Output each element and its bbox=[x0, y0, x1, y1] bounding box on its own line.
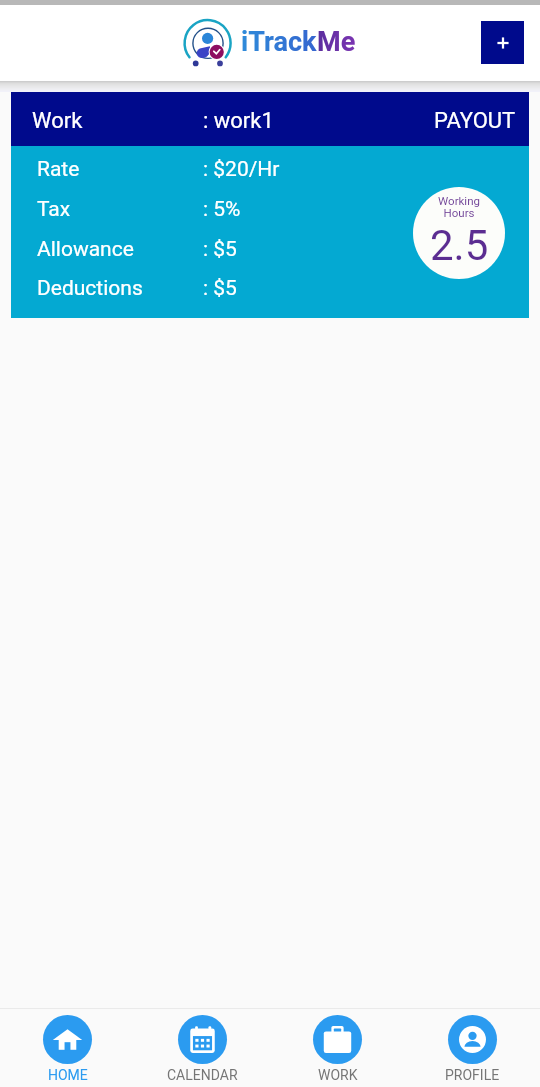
button[interactable]: HOME bbox=[0, 1008, 135, 1087]
staticText: : work1 bbox=[203, 108, 274, 134]
staticText: 2.5 bbox=[430, 221, 489, 270]
staticText: Work bbox=[32, 108, 83, 134]
button[interactable]: Add new work entry bbox=[481, 21, 524, 64]
staticText: Deductions bbox=[37, 276, 143, 301]
staticText: PROFILE bbox=[445, 1067, 500, 1083]
button[interactable]: PROFILE bbox=[405, 1008, 540, 1087]
staticText: Rate bbox=[37, 157, 80, 182]
staticText: : $20/Hr bbox=[203, 157, 280, 182]
staticText: Me bbox=[317, 26, 356, 58]
staticText: Allowance bbox=[37, 237, 134, 262]
staticText: PAYOUT bbox=[434, 108, 516, 134]
button[interactable]: Work bbox=[11, 92, 529, 146]
button[interactable]: CALENDAR bbox=[135, 1008, 270, 1087]
staticText: CALENDAR bbox=[167, 1067, 238, 1083]
staticText: : $5 bbox=[203, 237, 237, 262]
staticText: WORK bbox=[318, 1067, 358, 1083]
staticText: Working Hours bbox=[438, 194, 480, 220]
staticText: HOME bbox=[48, 1067, 88, 1083]
staticText: : $5 bbox=[203, 276, 237, 301]
staticText: Tax bbox=[37, 197, 71, 222]
button[interactable]: WORK bbox=[270, 1008, 405, 1087]
staticText: iTrack bbox=[241, 26, 317, 58]
staticText: : 5% bbox=[203, 197, 241, 222]
